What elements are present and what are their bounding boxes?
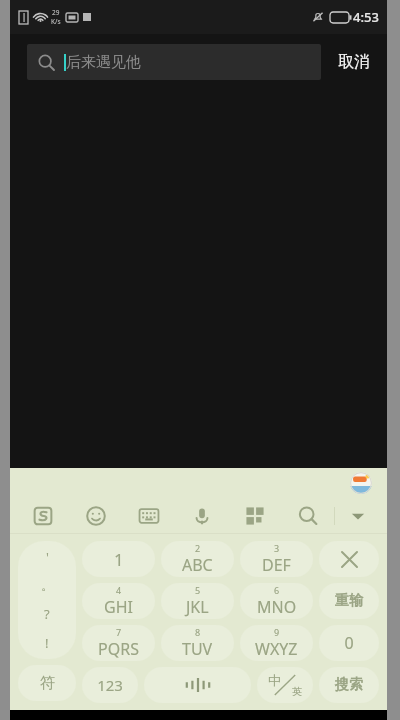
- button[interactable]: 2: [161, 541, 234, 577]
- button[interactable]: 6: [240, 583, 313, 619]
- button[interactable]: 5: [161, 583, 234, 619]
- staticText: 后来遇见他: [66, 53, 141, 72]
- staticText: 1: [114, 548, 124, 571]
- button[interactable]: Search: [281, 498, 334, 534]
- staticText: K/s: [51, 17, 61, 26]
- button[interactable]: 3: [240, 541, 313, 577]
- button[interactable]: 4: [82, 583, 155, 619]
- staticText: JKL: [186, 596, 209, 618]
- staticText: WXYZ: [255, 638, 298, 660]
- staticText: 6: [274, 584, 280, 596]
- button[interactable]: 后来遇见他: [27, 44, 321, 80]
- staticText: 4: [116, 584, 122, 596]
- staticText: MNO: [257, 596, 297, 618]
- staticText: 29: [52, 8, 60, 17]
- button[interactable]: 123: [82, 667, 138, 703]
- staticText: 英: [292, 685, 302, 698]
- button[interactable]: 7: [82, 625, 155, 661]
- staticText: 搜索: [335, 676, 363, 694]
- button[interactable]: 0: [319, 625, 379, 661]
- button[interactable]: Backspace: [319, 541, 379, 577]
- button[interactable]: 符: [18, 665, 76, 701]
- staticText: !: [45, 634, 49, 652]
- staticText: ?: [44, 605, 50, 623]
- staticText: 2: [195, 542, 201, 554]
- staticText: PQRS: [98, 638, 139, 660]
- button[interactable]: Keyboard layout: [122, 498, 175, 534]
- staticText: 7: [116, 626, 122, 638]
- button[interactable]: 9: [240, 625, 313, 661]
- staticText: 3: [274, 542, 280, 554]
- staticText: 9: [274, 626, 280, 638]
- staticText: 5: [195, 584, 201, 596]
- button[interactable]: 搜索: [319, 667, 379, 703]
- staticText: 中: [268, 672, 281, 688]
- staticText: 取消: [338, 52, 370, 72]
- staticText: 重输: [335, 592, 363, 610]
- staticText: 8: [195, 626, 201, 638]
- button[interactable]: Sogou input method: [16, 498, 69, 534]
- button[interactable]: 取消: [321, 34, 387, 90]
- staticText: 4:53: [353, 8, 379, 26]
- button[interactable]: 1: [82, 541, 155, 577]
- button[interactable]: Chinese English toggle: [257, 667, 313, 703]
- button[interactable]: 重输: [319, 583, 379, 619]
- button[interactable]: ': [18, 541, 76, 659]
- button[interactable]: Voice input: [175, 498, 228, 534]
- staticText: 0: [344, 632, 354, 654]
- staticText: 123: [97, 675, 123, 695]
- staticText: ABC: [182, 554, 213, 576]
- staticText: DEF: [262, 554, 291, 576]
- button[interactable]: More tools: [228, 498, 281, 534]
- staticText: TUV: [182, 638, 213, 660]
- button[interactable]: Hide keyboard: [335, 498, 381, 534]
- staticText: GHI: [104, 596, 133, 618]
- staticText: 。: [41, 577, 54, 593]
- button[interactable]: Emoji: [69, 498, 122, 534]
- staticText: ': [46, 548, 49, 566]
- button[interactable]: Sticker: [350, 472, 372, 494]
- button[interactable]: 8: [161, 625, 234, 661]
- button[interactable]: Space: [144, 667, 251, 703]
- staticText: 符: [40, 674, 55, 693]
